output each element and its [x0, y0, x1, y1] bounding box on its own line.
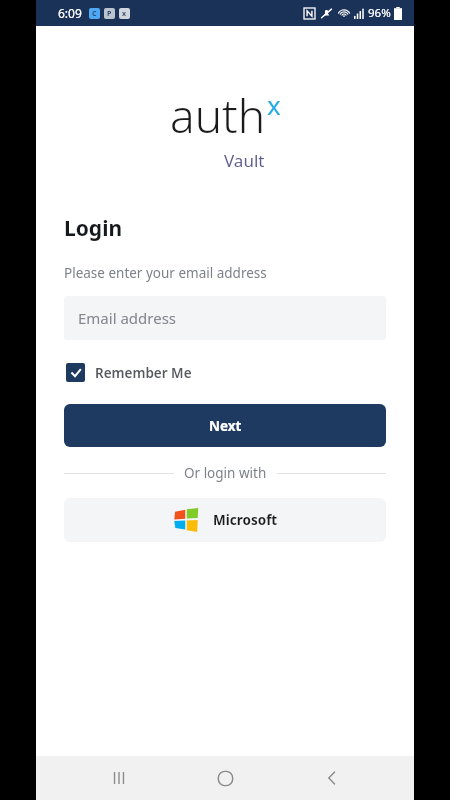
staticText: Email address	[78, 308, 177, 328]
button[interactable]: Email address	[64, 296, 386, 340]
button[interactable]: Recent apps	[95, 756, 143, 800]
staticText: Please enter your email address	[64, 264, 267, 282]
staticText: Next	[209, 417, 242, 435]
staticText: Vault	[224, 149, 265, 172]
staticText: x	[122, 9, 127, 19]
button[interactable]: Home	[201, 756, 249, 800]
staticText: 6:09	[58, 5, 82, 21]
button[interactable]: Microsoft	[64, 498, 386, 542]
button[interactable]: Next	[64, 404, 386, 447]
staticText: 96%	[368, 5, 391, 21]
button[interactable]: Remember Me	[64, 361, 194, 384]
staticText: Login	[64, 214, 123, 243]
staticText: C	[92, 9, 97, 19]
staticText: Microsoft	[213, 511, 278, 529]
staticText: Or login with	[184, 464, 267, 482]
staticText: auth	[170, 84, 266, 147]
staticText: P	[107, 9, 112, 19]
button[interactable]: Back	[308, 756, 356, 800]
staticText: x	[267, 87, 281, 122]
staticText: Remember Me	[95, 364, 192, 382]
